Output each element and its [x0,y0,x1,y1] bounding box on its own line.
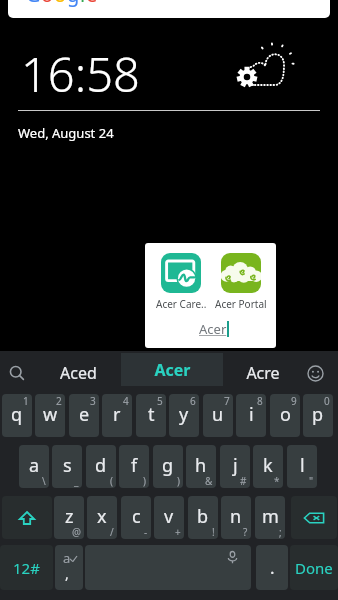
button[interactable]: l [287,445,317,488]
button[interactable]: z [54,496,84,539]
staticText: e [79,402,90,427]
button[interactable]: y [169,394,199,437]
staticText: 7 [224,394,230,408]
staticText: g [67,0,80,8]
button[interactable]: d [86,445,116,488]
staticText: 1 [23,394,29,408]
button[interactable]: G [8,0,330,18]
staticText: 3 [90,394,96,408]
button[interactable]: Weather settings [236,43,294,89]
button[interactable]: j [220,445,250,488]
staticText: 5 [157,394,163,408]
button[interactable]: Aced [34,351,122,394]
button[interactable]: Acer [121,353,223,386]
button[interactable]: Acre [223,351,303,394]
button[interactable]: p [303,394,333,437]
staticText: u [212,402,224,427]
button[interactable]: w [35,394,65,437]
staticText: t [148,402,155,427]
staticText: Acer Portal [215,297,267,311]
staticText: r [113,402,121,427]
staticText: Aced [60,362,97,384]
button[interactable]: q [2,394,32,437]
button[interactable]: Acer Portal [213,253,269,311]
staticText: c [132,504,141,529]
staticText: ) [177,474,180,488]
staticText: z [65,504,74,529]
staticText: Wed, August 24 [18,124,114,142]
button[interactable]: c [121,496,151,539]
staticText: d [95,453,107,478]
staticText: e [86,0,98,8]
staticText: 12# [13,558,40,578]
staticText: x [97,504,107,529]
staticText: 16:58 [21,42,140,98]
staticText: k [263,453,273,478]
button[interactable]: o [270,394,300,437]
staticText: a [63,549,71,567]
staticText: Acre [246,362,280,384]
button[interactable]: h [186,445,216,488]
button[interactable]: Language [55,545,83,590]
staticText: # [240,474,247,488]
button[interactable]: Emoji [298,356,332,390]
staticText: , [65,564,69,583]
button[interactable]: . [256,545,288,590]
button[interactable]: Shift [2,496,52,539]
staticText: b [197,504,209,529]
staticText: l [300,453,305,478]
button[interactable]: s [52,445,82,488]
staticText: o [54,0,67,8]
staticText: ! [212,525,215,539]
button[interactable]: b [188,496,218,539]
button[interactable]: f [119,445,149,488]
button[interactable]: m [255,496,285,539]
button[interactable]: k [253,445,283,488]
staticText: Acer Care.. [156,297,207,311]
staticText: 2 [56,394,62,408]
staticText: 8 [257,394,263,408]
staticText: i [249,402,254,427]
button[interactable]: a [19,445,49,488]
button[interactable]: v [154,496,184,539]
button[interactable]: r [102,394,132,437]
staticText: v [164,504,174,529]
staticText: ? [243,525,248,539]
button[interactable]: Done [290,545,338,590]
staticText: G [26,0,41,8]
staticText: * [274,474,280,488]
button[interactable]: i [236,394,266,437]
staticText: o [41,0,54,8]
staticText: Acer [154,359,191,381]
staticText: h [195,453,207,478]
staticText: \ [42,474,46,488]
staticText: g [162,453,174,478]
button[interactable]: t [136,394,166,437]
button[interactable]: Symbols [0,545,53,590]
button[interactable]: g [153,445,183,488]
staticText: 6 [190,394,196,408]
staticText: / [110,525,114,539]
staticText: 4 [123,394,129,408]
staticText: ; [279,525,282,539]
staticText: & [205,474,213,488]
staticText: Done [295,558,333,578]
other: Acer Portal [221,253,261,293]
button[interactable]: u [203,394,233,437]
button[interactable]: n [221,496,251,539]
button[interactable]: Backspace [291,496,337,539]
button[interactable]: x [87,496,117,539]
staticText: ( [110,474,113,488]
button[interactable]: Acer [199,320,229,338]
staticText: w [43,402,58,427]
button[interactable]: Space [85,545,251,590]
staticText: - [144,525,148,539]
staticText: + [175,525,181,539]
button[interactable]: Acer Care Center [153,253,209,311]
button[interactable]: Search [0,351,34,394]
button[interactable]: e [69,394,99,437]
staticText: a [29,453,40,478]
staticText: " [309,474,314,488]
staticText: q [11,402,23,427]
staticText: Acer [199,320,227,338]
